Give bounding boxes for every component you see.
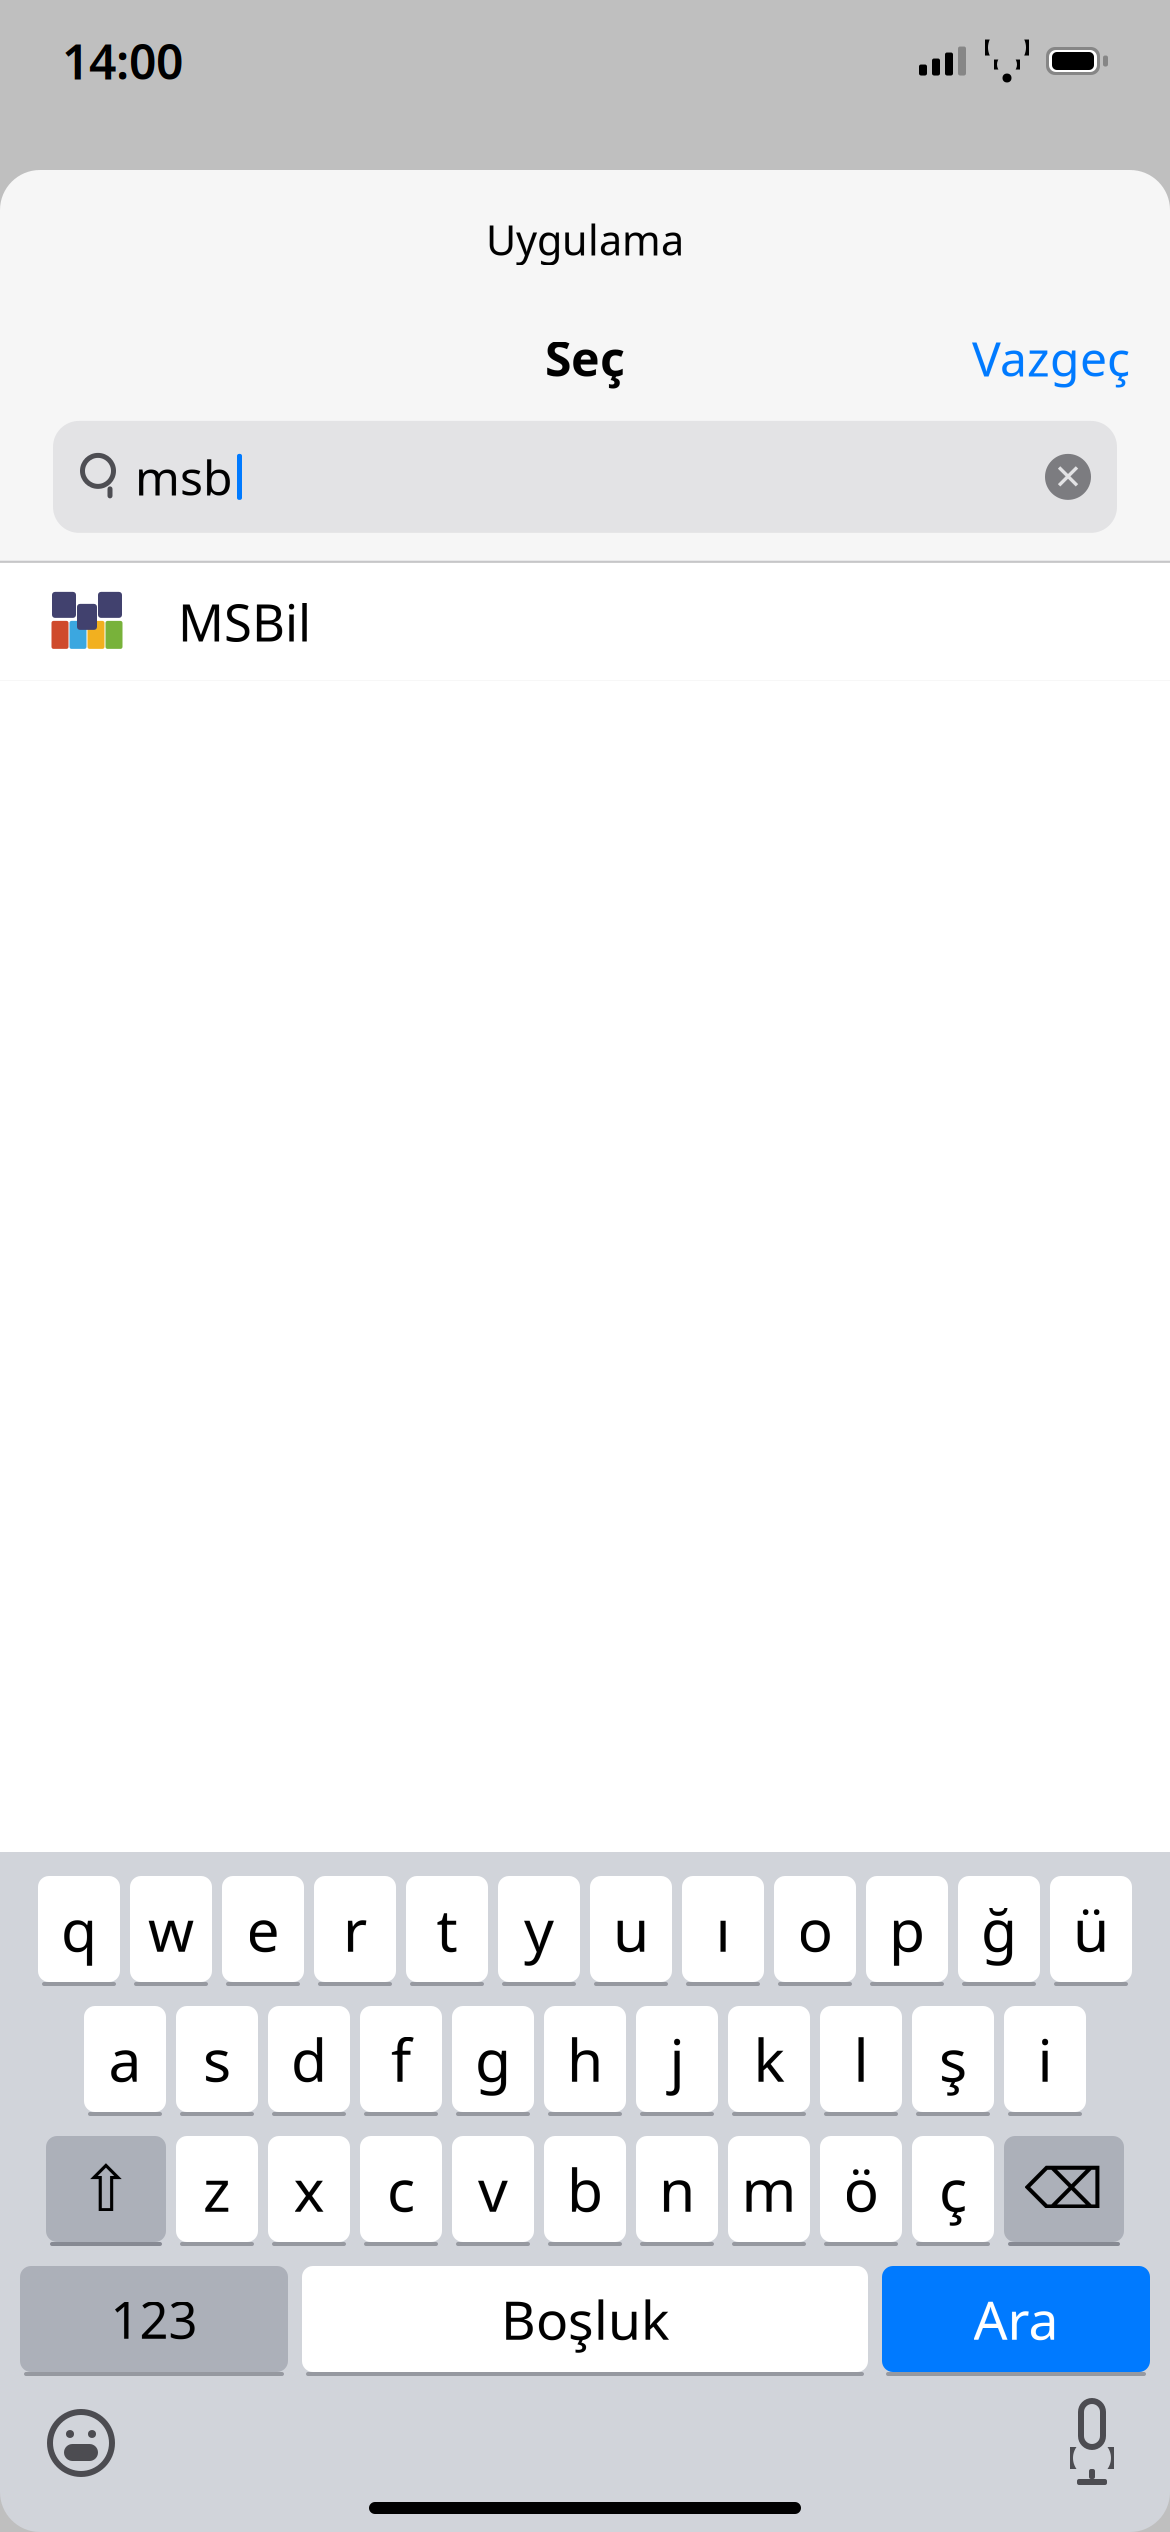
staticText: 14:00 — [62, 29, 183, 93]
staticText: 123 — [110, 2285, 197, 2353]
button[interactable]: z — [176, 2136, 258, 2246]
staticText: m — [741, 2150, 796, 2228]
staticText: ü — [1073, 1890, 1109, 1968]
staticText: n — [659, 2150, 695, 2228]
button[interactable]: m — [728, 2136, 810, 2246]
staticText: b — [567, 2150, 603, 2228]
staticText: j — [669, 2020, 684, 2098]
staticText: ✕ — [1053, 457, 1082, 496]
staticText: d — [291, 2020, 327, 2098]
button[interactable]: w — [130, 1876, 212, 1986]
staticText: r — [343, 1890, 367, 1968]
button[interactable]: b — [544, 2136, 626, 2246]
staticText: MSBil — [178, 588, 311, 655]
staticText: q — [61, 1890, 97, 1968]
staticText: z — [203, 2150, 231, 2228]
staticText: h — [567, 2020, 603, 2098]
staticText: ç — [939, 2150, 967, 2228]
staticText: f — [391, 2020, 411, 2098]
staticText: l — [853, 2020, 868, 2098]
staticText: Boşluk — [501, 2284, 669, 2354]
staticText: ö — [843, 2150, 878, 2228]
button[interactable]: t — [406, 1876, 488, 1986]
staticText: Seç — [545, 326, 625, 390]
staticText: Ara — [973, 2284, 1058, 2354]
button[interactable]: r — [314, 1876, 396, 1986]
button[interactable]: a — [84, 2006, 166, 2116]
button[interactable]: e — [222, 1876, 304, 1986]
button[interactable]: MSBil — [0, 563, 1170, 681]
staticText: ğ — [981, 1890, 1017, 1968]
button[interactable]: ğ — [958, 1876, 1040, 1986]
button[interactable]: k — [728, 2006, 810, 2116]
button[interactable]: Ara — [882, 2266, 1150, 2376]
staticText: k — [753, 2020, 784, 2098]
staticText: p — [889, 1890, 925, 1968]
button[interactable]: x — [268, 2136, 350, 2246]
staticText: ı — [715, 1890, 730, 1968]
staticText: x — [293, 2150, 324, 2228]
button[interactable]: j — [636, 2006, 718, 2116]
staticText: e — [246, 1890, 279, 1968]
button[interactable]: Boşluk — [302, 2266, 868, 2376]
button[interactable]: c — [360, 2136, 442, 2246]
button[interactable]: 123 — [20, 2266, 288, 2376]
staticText: t — [436, 1890, 457, 1968]
button[interactable]: h — [544, 2006, 626, 2116]
button[interactable]: ü — [1050, 1876, 1132, 1986]
button[interactable]: q — [38, 1876, 120, 1986]
button[interactable]: ç — [912, 2136, 994, 2246]
button[interactable]: n — [636, 2136, 718, 2246]
button[interactable]: g — [452, 2006, 534, 2116]
button[interactable]: ş — [912, 2006, 994, 2116]
button[interactable]: l — [820, 2006, 902, 2116]
button[interactable]: ö — [820, 2136, 902, 2246]
button[interactable]: ı — [682, 1876, 764, 1986]
button[interactable]: Sil — [1004, 2136, 1124, 2246]
staticText: c — [387, 2150, 415, 2228]
staticText: y — [524, 1890, 554, 1968]
staticText: Uygulama — [486, 212, 684, 267]
staticText: ⇧ — [79, 2153, 133, 2225]
button[interactable]: Dikte — [1062, 2389, 1170, 2497]
button[interactable]: o — [774, 1876, 856, 1986]
staticText: ş — [939, 2020, 967, 2098]
button[interactable]: v — [452, 2136, 534, 2246]
button[interactable]: Vazgeç — [954, 314, 1148, 402]
staticText: w — [148, 1890, 194, 1968]
staticText: a — [108, 2020, 141, 2098]
staticText: v — [478, 2150, 508, 2228]
button[interactable]: u — [590, 1876, 672, 1986]
button[interactable]: p — [866, 1876, 948, 1986]
button[interactable]: f — [360, 2006, 442, 2116]
button[interactable]: d — [268, 2006, 350, 2116]
button[interactable]: s — [176, 2006, 258, 2116]
staticText: Vazgeç — [972, 326, 1130, 390]
button[interactable]: i — [1004, 2006, 1086, 2116]
staticText: msb — [135, 445, 233, 509]
button[interactable]: Shift — [46, 2136, 166, 2246]
staticText: g — [475, 2020, 511, 2098]
button[interactable]: y — [498, 1876, 580, 1986]
staticText: u — [613, 1890, 649, 1968]
staticText: s — [203, 2020, 231, 2098]
staticText: ⌫ — [1024, 2157, 1103, 2221]
button[interactable]: Aramayı temizle — [1045, 434, 1117, 520]
staticText: i — [1037, 2020, 1052, 2098]
button[interactable]: Emoji — [0, 2394, 114, 2492]
staticText: o — [797, 1890, 832, 1968]
